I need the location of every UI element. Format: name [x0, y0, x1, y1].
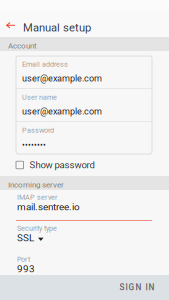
staticText: user@example.com [22, 73, 102, 84]
button[interactable]: IMAP server [0, 190, 169, 221]
staticText: 993 [17, 263, 35, 275]
staticText: IMAP server [17, 193, 57, 201]
button[interactable]: User name [16, 89, 152, 121]
button[interactable]: SIGN IN [0, 275, 169, 300]
staticText: User name [22, 93, 57, 101]
staticText: Security type [17, 224, 57, 232]
button[interactable]: Security type [0, 221, 169, 252]
staticText: mail.sentree.io [17, 201, 80, 213]
staticText: Password [22, 126, 54, 134]
staticText: Email address [22, 60, 68, 68]
button[interactable]: Port [0, 252, 169, 282]
staticText: user@example.com [22, 106, 102, 117]
button[interactable]: Back [0, 12, 22, 37]
staticText: Show password [29, 159, 94, 171]
staticText: •••••••• [22, 140, 46, 150]
staticText: Incoming server [8, 180, 64, 189]
staticText: Port [17, 255, 30, 263]
button[interactable]: Email address [16, 56, 152, 88]
staticText: Manual setup [23, 21, 91, 34]
staticText: SIGN IN [119, 283, 154, 292]
staticText: Account [8, 41, 37, 50]
button[interactable]: Password [16, 122, 152, 154]
button[interactable]: Show password [0, 154, 169, 176]
staticText: SSL [17, 232, 34, 244]
